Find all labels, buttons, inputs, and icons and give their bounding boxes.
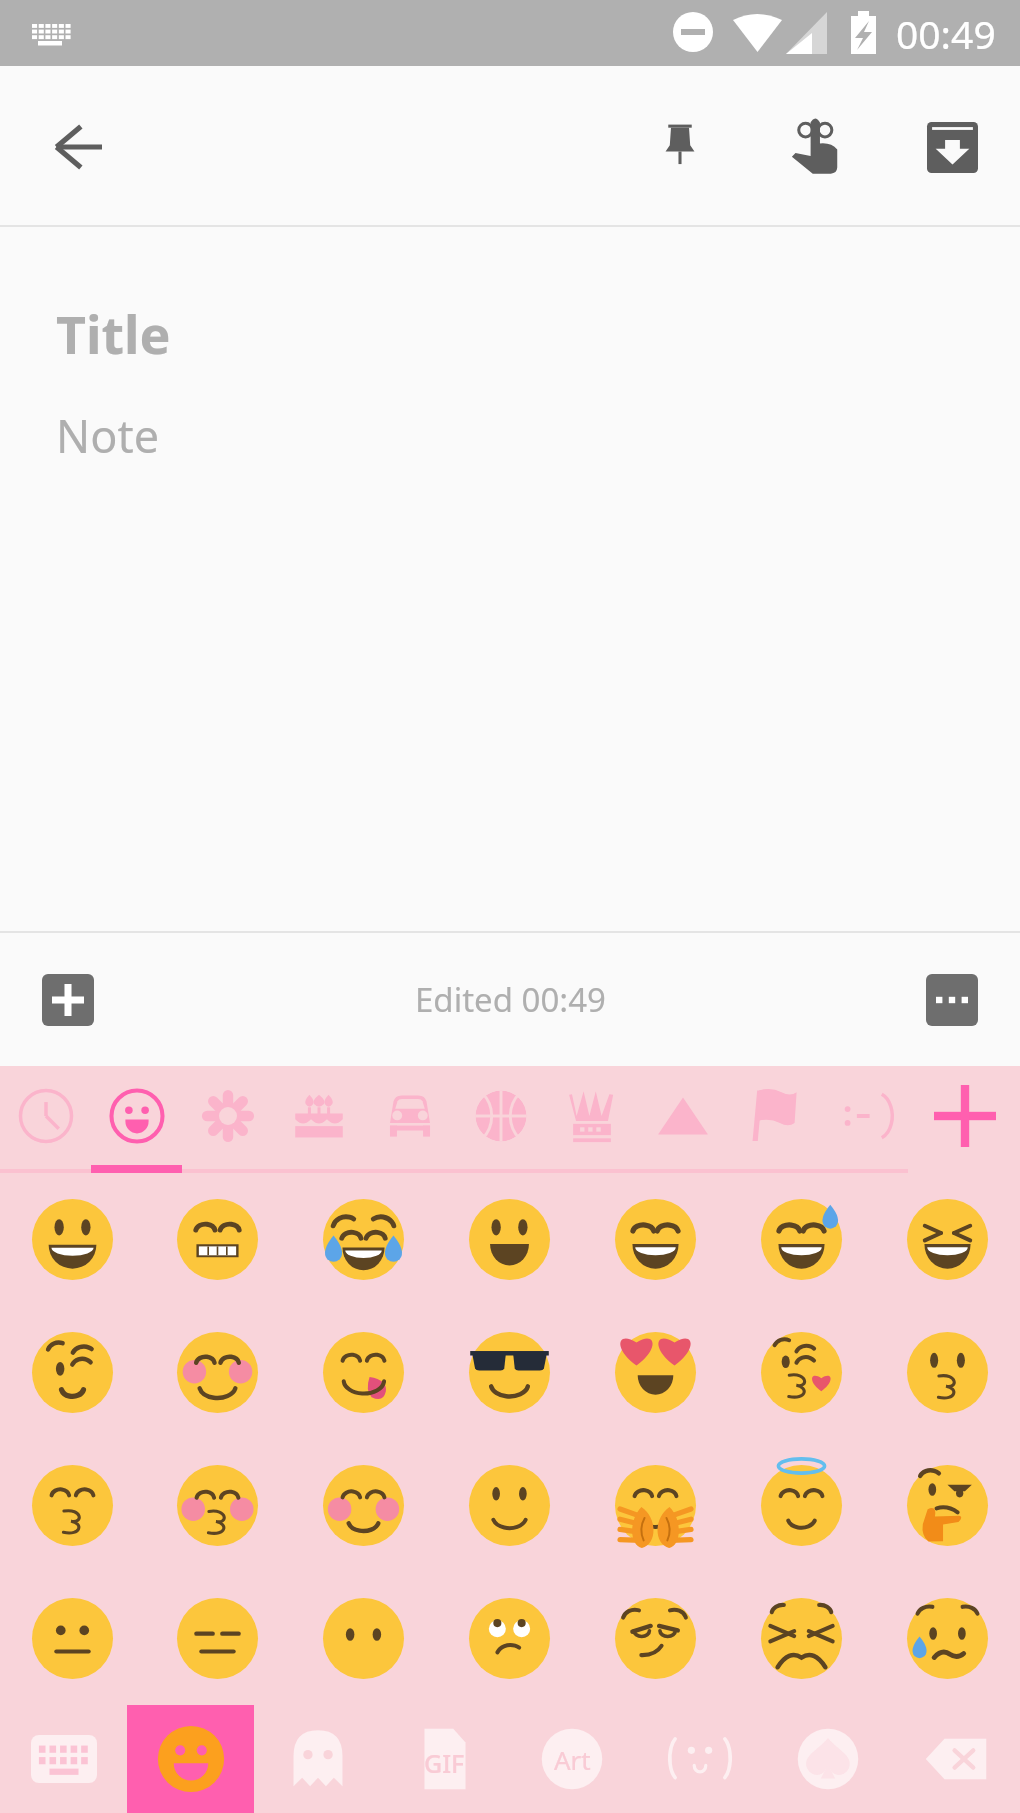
button[interactable]: Emoji 22	[145, 1572, 290, 1705]
button[interactable]: Back	[18, 87, 138, 207]
button[interactable]: Recent	[0, 1066, 91, 1166]
button[interactable]: Emoji 27	[874, 1572, 1020, 1705]
button[interactable]: More options	[902, 950, 1002, 1050]
button[interactable]: Emoji 16	[290, 1439, 436, 1572]
button[interactable]: Emoji 7	[0, 1306, 145, 1439]
button[interactable]: Emoji 9	[290, 1306, 436, 1439]
button[interactable]: Emoji 26	[728, 1572, 874, 1705]
button[interactable]: Add	[18, 950, 118, 1050]
button[interactable]: Kaomoji	[636, 1705, 764, 1813]
button[interactable]: Art	[508, 1705, 636, 1813]
button[interactable]: Archive	[884, 79, 1020, 215]
button[interactable]: Emoji 10	[436, 1306, 582, 1439]
button[interactable]: Objects	[546, 1066, 637, 1166]
staticText: 00:49	[896, 7, 996, 60]
button[interactable]: Emoji 19	[728, 1439, 874, 1572]
button[interactable]: Add sticker	[910, 1066, 1020, 1166]
button[interactable]: Stickers	[254, 1705, 381, 1813]
button[interactable]: Food	[273, 1066, 364, 1166]
button[interactable]: Emoji 1	[145, 1173, 290, 1306]
button[interactable]: Pin	[612, 79, 748, 215]
button[interactable]: Flags	[728, 1066, 819, 1166]
button[interactable]: Emoticons	[819, 1066, 910, 1166]
button[interactable]: Nature	[182, 1066, 273, 1166]
button[interactable]: Emoji 2	[290, 1173, 436, 1306]
button[interactable]: Backspace	[892, 1705, 1020, 1813]
button[interactable]: Activity	[455, 1066, 546, 1166]
staticText: Title	[56, 298, 171, 369]
button[interactable]: Emoji 23	[290, 1572, 436, 1705]
button[interactable]: Keyboard	[0, 1705, 127, 1813]
staticText: Edited 00:49	[415, 977, 606, 1022]
button[interactable]: Emoji 0	[0, 1173, 145, 1306]
button[interactable]: Emoji 6	[874, 1173, 1020, 1306]
button[interactable]: Emoji 8	[145, 1306, 290, 1439]
button[interactable]: Travel	[364, 1066, 455, 1166]
button[interactable]: Emoji 13	[874, 1306, 1020, 1439]
button[interactable]: Emoji 17	[436, 1439, 582, 1572]
button[interactable]: Emoji 21	[0, 1572, 145, 1705]
button[interactable]: Emoji 25	[582, 1572, 728, 1705]
staticText: Note	[56, 405, 160, 466]
button[interactable]: Emoji 20	[874, 1439, 1020, 1572]
button[interactable]: Emoji 3	[436, 1173, 582, 1306]
button[interactable]: Emoji 4	[582, 1173, 728, 1306]
button[interactable]: Smileys	[91, 1066, 182, 1166]
button[interactable]: Emoji 24	[436, 1572, 582, 1705]
staticText: Art	[554, 1742, 591, 1777]
staticText: GIF	[424, 1746, 465, 1780]
button[interactable]: Emoji 5	[728, 1173, 874, 1306]
button[interactable]: GIF	[381, 1705, 508, 1813]
button[interactable]: Emoji 12	[728, 1306, 874, 1439]
button[interactable]: Symbols	[637, 1066, 728, 1166]
button[interactable]: Themes	[764, 1705, 892, 1813]
button[interactable]: Emoji 11	[582, 1306, 728, 1439]
button[interactable]: Reminder	[748, 79, 884, 215]
button[interactable]: Emoji 14	[0, 1439, 145, 1572]
button[interactable]: Emoji 18	[582, 1439, 728, 1572]
button[interactable]: Emoji	[127, 1705, 254, 1813]
button[interactable]: Emoji 15	[145, 1439, 290, 1572]
